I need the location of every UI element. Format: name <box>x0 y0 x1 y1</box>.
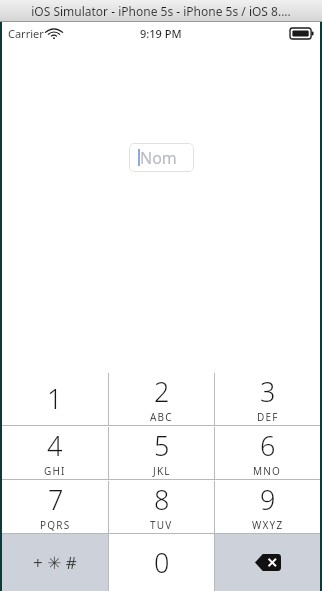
button[interactable]: 2 <box>109 372 214 425</box>
staticText: iOS Simulator - iPhone 5s - iPhone 5s / … <box>31 3 291 19</box>
staticText: 8 <box>154 481 170 518</box>
button[interactable]: 6 <box>215 426 320 479</box>
staticText: TUV <box>150 518 173 532</box>
button[interactable]: 0 <box>109 534 214 591</box>
button[interactable]: 7 <box>2 480 108 533</box>
button[interactable]: 4 <box>2 426 108 479</box>
staticText: 6 <box>260 427 276 464</box>
staticText: 4 <box>47 427 63 464</box>
staticText: 5 <box>154 427 170 464</box>
button[interactable]: 1 <box>2 372 108 425</box>
staticText: Carrier <box>8 26 44 41</box>
staticText: + ✳ # <box>33 551 77 574</box>
button[interactable]: Delete <box>215 534 320 591</box>
staticText: GHI <box>44 464 66 478</box>
staticText: JKL <box>153 464 171 478</box>
button[interactable]: 5 <box>109 426 214 479</box>
staticText: DEF <box>257 410 279 424</box>
button[interactable]: + ✳ # <box>2 534 108 591</box>
staticText: 9:19 PM <box>140 26 182 41</box>
staticText: PQRS <box>40 518 71 532</box>
staticText: 0 <box>154 544 170 581</box>
button[interactable]: Nom <box>129 143 194 172</box>
staticText: WXYZ <box>252 518 284 532</box>
button[interactable]: 3 <box>215 372 320 425</box>
staticText: 3 <box>260 373 276 410</box>
button[interactable]: 9 <box>215 480 320 533</box>
staticText: 9 <box>260 481 276 518</box>
staticText: ABC <box>150 410 173 424</box>
staticText: Nom <box>140 147 177 169</box>
staticText: MNO <box>253 464 282 478</box>
staticText: 7 <box>48 481 64 518</box>
staticText: 2 <box>154 373 170 410</box>
staticText: 1 <box>47 380 63 417</box>
button[interactable]: 8 <box>109 480 214 533</box>
